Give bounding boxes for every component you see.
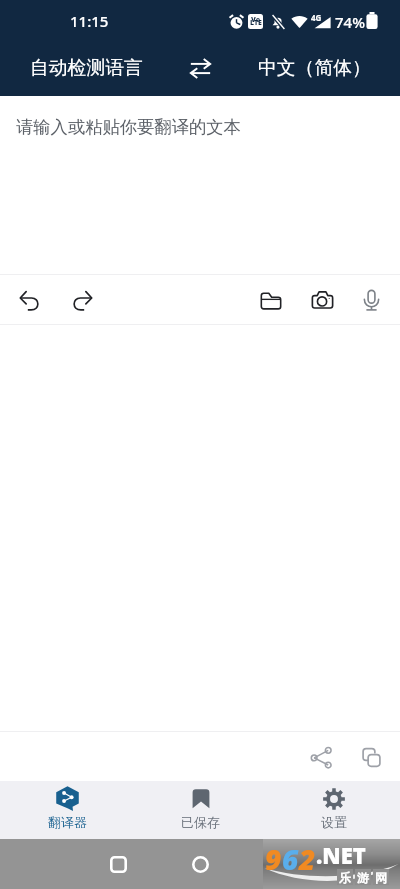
staticText: .NET — [316, 840, 366, 870]
staticText: 9 — [265, 840, 282, 878]
button[interactable]: 已保存 — [134, 781, 267, 839]
button[interactable]: 中文（简体） — [228, 40, 400, 96]
button[interactable]: Recents — [100, 846, 136, 882]
staticText: 设置 — [321, 814, 347, 830]
staticText: 74% — [335, 12, 365, 32]
button[interactable]: Undo — [7, 278, 51, 322]
button[interactable]: Home — [182, 846, 218, 882]
button[interactable]: 翻译器 — [0, 781, 134, 839]
staticText: LTE — [250, 18, 262, 28]
staticText: 中文（简体） — [258, 56, 371, 80]
button[interactable]: Camera — [300, 278, 344, 322]
button[interactable]: Copy — [349, 735, 393, 779]
button[interactable]: 设置 — [267, 781, 400, 839]
staticText: 乐 — [339, 870, 351, 885]
staticText: 游 — [357, 870, 369, 885]
staticText: 自动检测语言 — [30, 56, 143, 80]
staticText: 2 — [299, 840, 316, 878]
staticText: 翻译器 — [48, 814, 87, 830]
staticText: 已保存 — [181, 814, 220, 830]
button[interactable]: Share — [299, 735, 343, 779]
staticText: 请输入或粘贴你要翻译的文本 — [16, 116, 241, 138]
staticText: 6 — [282, 840, 299, 878]
staticText: 网 — [375, 870, 387, 885]
button[interactable]: 自动检测语言 — [0, 40, 172, 96]
button[interactable]: Swap languages — [172, 40, 228, 96]
staticText: Vo — [251, 15, 261, 25]
button[interactable]: Voice input — [349, 278, 393, 322]
staticText: 4G — [311, 12, 322, 23]
button[interactable]: Documents — [249, 278, 293, 322]
staticText: 11:15 — [70, 11, 109, 31]
button[interactable]: Redo — [60, 278, 104, 322]
